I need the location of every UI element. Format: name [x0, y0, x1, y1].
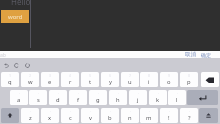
staticText: 7 — [129, 73, 132, 78]
button[interactable]: 8 — [140, 72, 158, 87]
staticText: n — [128, 114, 132, 122]
staticText: 4 — [69, 73, 72, 78]
staticText: 9 — [168, 73, 171, 78]
button[interactable]: · — [180, 108, 198, 123]
staticText: · — [78, 91, 79, 96]
button[interactable]: · — [61, 108, 79, 123]
button[interactable]: 0 — [180, 72, 198, 87]
staticText: j — [137, 96, 139, 104]
button[interactable]: Symbols — [199, 108, 218, 123]
button[interactable]: · — [140, 108, 158, 123]
button[interactable]: Redo — [11, 60, 21, 70]
staticText: 2 — [29, 73, 32, 78]
staticText: · — [30, 109, 31, 114]
staticText: 6 — [109, 73, 112, 78]
button[interactable]: · — [149, 90, 167, 105]
button[interactable]: Undo — [1, 60, 11, 70]
staticText: · — [189, 109, 190, 114]
staticText: · — [158, 91, 159, 96]
staticText: · — [110, 109, 111, 114]
staticText: b — [108, 114, 112, 122]
staticText: · — [177, 91, 178, 96]
button[interactable]: 3 — [41, 72, 59, 87]
button[interactable]: · — [49, 90, 67, 105]
button[interactable]: 9 — [160, 72, 178, 87]
button[interactable]: word — [1, 10, 29, 23]
staticText: ab — [0, 52, 6, 59]
staticText: word — [8, 13, 23, 21]
staticText: e — [48, 78, 52, 86]
button[interactable]: 2 — [21, 72, 39, 87]
staticText: 取消 — [185, 51, 196, 58]
button[interactable]: · — [29, 90, 47, 105]
button[interactable]: · — [101, 108, 119, 123]
button[interactable]: Enter — [187, 90, 218, 105]
staticText: · — [149, 109, 150, 114]
staticText: · — [130, 109, 131, 114]
staticText: · — [138, 91, 139, 96]
staticText: i — [148, 78, 150, 86]
staticText: 确定 — [201, 52, 211, 58]
staticText: · — [58, 91, 59, 96]
staticText: l — [176, 96, 178, 104]
staticText: · — [19, 91, 20, 96]
staticText: r — [69, 78, 72, 86]
staticText: u — [128, 78, 132, 86]
staticText: · — [90, 109, 91, 114]
button[interactable]: · — [10, 90, 28, 105]
staticText: m — [146, 114, 152, 122]
button[interactable]: More — [22, 60, 32, 70]
button[interactable]: 1 — [1, 72, 19, 87]
button[interactable]: · — [21, 108, 39, 123]
button[interactable]: · — [121, 108, 139, 123]
button[interactable]: Backspace — [201, 72, 219, 87]
staticText: 0 — [188, 73, 191, 78]
button[interactable]: Shift — [1, 108, 19, 123]
staticText: v — [89, 114, 92, 122]
staticText: · — [50, 109, 51, 114]
button[interactable]: · — [168, 90, 186, 105]
staticText: y — [109, 78, 112, 86]
staticText: p — [187, 78, 191, 86]
staticText: · — [169, 109, 170, 114]
button[interactable]: 5 — [81, 72, 99, 87]
button[interactable]: · — [69, 90, 87, 105]
button[interactable]: 6 — [101, 72, 119, 87]
staticText: 5 — [89, 73, 92, 78]
staticText: · — [118, 91, 119, 96]
staticText: s — [37, 96, 40, 104]
staticText: t — [89, 78, 92, 86]
button[interactable]: · — [81, 108, 99, 123]
staticText: 1 — [9, 73, 12, 78]
button[interactable]: · — [109, 90, 127, 105]
staticText: d — [56, 96, 60, 104]
button[interactable]: · — [129, 90, 147, 105]
staticText: 8 — [148, 73, 151, 78]
button[interactable]: 4 — [61, 72, 79, 87]
staticText: o — [167, 78, 171, 86]
staticText: ? — [188, 114, 191, 122]
staticText: h — [116, 96, 120, 104]
staticText: z — [29, 114, 32, 122]
staticText: · — [38, 91, 39, 96]
staticText: ! — [168, 114, 170, 122]
button[interactable]: · — [41, 108, 59, 123]
staticText: c — [69, 114, 72, 122]
staticText: f — [77, 96, 79, 104]
button[interactable]: · — [160, 108, 178, 123]
button[interactable]: 7 — [121, 72, 139, 87]
staticText: · — [70, 109, 71, 114]
staticText: g — [96, 96, 100, 104]
staticText: 3 — [49, 73, 52, 78]
staticText: w — [28, 78, 33, 86]
staticText: x — [48, 114, 52, 122]
staticText: q — [8, 78, 12, 86]
button[interactable]: · — [89, 90, 107, 105]
staticText: Hello — [11, 0, 31, 7]
staticText: k — [156, 96, 160, 104]
staticText: a — [17, 96, 21, 104]
staticText: · — [98, 91, 99, 96]
